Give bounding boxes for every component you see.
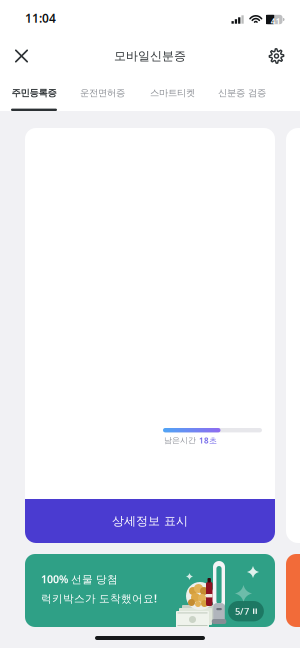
staticText: 운전면허증: [80, 87, 125, 99]
button[interactable]: 운전면허증: [67, 75, 138, 111]
staticText: 5/7: [235, 605, 249, 617]
staticText: 11:04: [25, 10, 56, 26]
staticText: 주민등록증: [11, 87, 56, 99]
staticText: 신분증 검증: [218, 87, 266, 99]
button[interactable]: 주민등록증: [1, 75, 67, 111]
button[interactable]: 신분증 검증: [207, 75, 277, 111]
staticText: 100% 선물 당첨: [41, 572, 118, 586]
button[interactable]: 스마트티켓: [138, 75, 207, 111]
button[interactable]: 100% 선물 당첨: [25, 554, 275, 627]
button[interactable]: Settings: [261, 37, 295, 75]
staticText: 남은시간: [164, 435, 196, 445]
button[interactable]: Close: [4, 37, 38, 75]
staticText: 41: [271, 16, 281, 26]
staticText: 상세정보 표시: [112, 514, 188, 528]
staticText: 럭키박스가 도착했어요!: [41, 591, 157, 605]
button[interactable]: 상세정보 표시: [25, 499, 275, 543]
staticText: 스마트티켓: [150, 87, 195, 99]
staticText: 18초: [199, 435, 217, 446]
staticText: 모바일신분증: [114, 49, 186, 63]
